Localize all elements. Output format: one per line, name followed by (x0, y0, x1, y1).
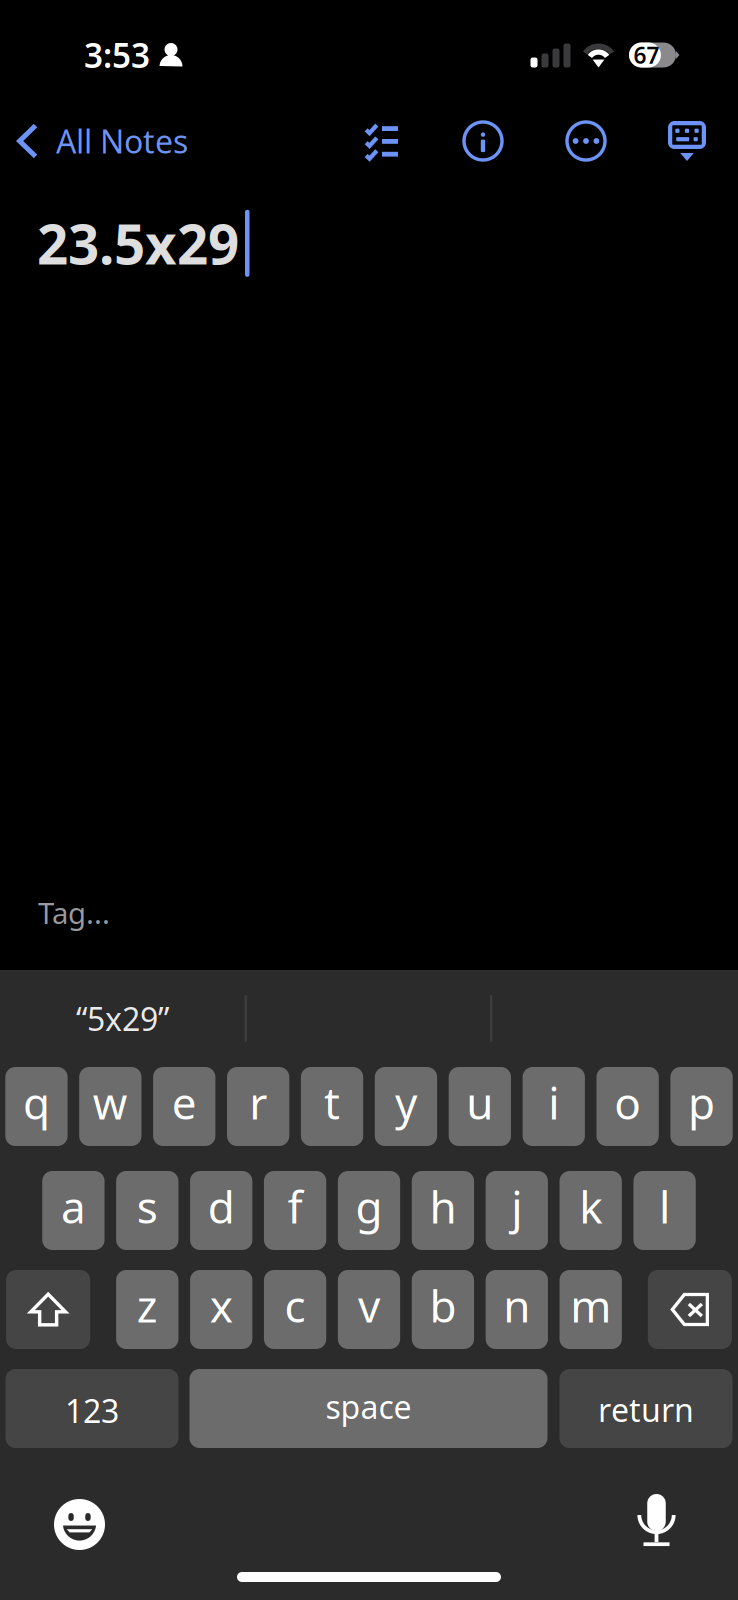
staticText: a (61, 1177, 86, 1236)
staticText: j (511, 1177, 522, 1236)
button[interactable]: return (559, 1369, 732, 1448)
staticText: 3:53 (84, 33, 150, 77)
staticText: o (614, 1073, 641, 1132)
staticText: 123 (65, 1389, 119, 1432)
staticText: d (208, 1177, 235, 1236)
button[interactable]: space (189, 1369, 547, 1448)
staticText: “5x29” (76, 997, 169, 1040)
button[interactable]: w (79, 1067, 141, 1146)
button[interactable]: b (412, 1270, 474, 1349)
button[interactable]: p (670, 1067, 733, 1146)
button[interactable]: n (486, 1270, 548, 1349)
button[interactable]: q (5, 1067, 68, 1146)
staticText: n (503, 1276, 530, 1335)
button[interactable]: Dictation (637, 1494, 676, 1550)
button[interactable]: d (190, 1171, 252, 1250)
staticText: return (598, 1388, 694, 1431)
staticText: b (429, 1276, 456, 1335)
button[interactable]: x (190, 1270, 252, 1349)
button[interactable]: f (264, 1171, 326, 1250)
button[interactable]: e (153, 1067, 215, 1146)
button[interactable]: Shift (6, 1270, 90, 1349)
staticText: 67 (633, 40, 659, 70)
staticText: t (324, 1073, 340, 1132)
staticText: e (172, 1073, 197, 1132)
staticText: h (429, 1177, 456, 1236)
button[interactable]: c (264, 1270, 326, 1349)
button[interactable]: Checklist (346, 110, 418, 172)
button[interactable]: j (486, 1171, 548, 1250)
button[interactable]: u (449, 1067, 511, 1146)
button[interactable]: Delete (648, 1270, 732, 1349)
staticText: k (579, 1177, 602, 1236)
button[interactable]: o (596, 1067, 659, 1146)
staticText: i (548, 1073, 559, 1132)
staticText: z (137, 1276, 158, 1335)
button[interactable]: Tag... (0, 893, 738, 970)
button[interactable]: All Notes (0, 108, 188, 174)
staticText: g (355, 1177, 382, 1236)
button[interactable]: a (42, 1171, 104, 1250)
button[interactable]: r (227, 1067, 289, 1146)
staticText: p (688, 1073, 715, 1132)
staticText: 23.5x29 (37, 207, 239, 280)
staticText: y (395, 1073, 417, 1132)
button[interactable]: g (338, 1171, 400, 1250)
staticText: s (137, 1177, 158, 1236)
button[interactable]: k (559, 1171, 622, 1250)
staticText: l (659, 1177, 670, 1236)
staticText: w (93, 1073, 128, 1132)
staticText: m (570, 1276, 611, 1335)
staticText: q (23, 1073, 50, 1132)
staticText: r (249, 1073, 267, 1132)
button[interactable]: 123 (5, 1369, 178, 1448)
staticText: All Notes (56, 120, 188, 162)
button[interactable]: s (116, 1171, 178, 1250)
staticText: v (358, 1276, 380, 1335)
button[interactable]: h (412, 1171, 474, 1250)
button[interactable]: z (116, 1270, 178, 1349)
staticText: c (285, 1276, 306, 1335)
button[interactable]: More (550, 110, 622, 172)
staticText: space (325, 1385, 411, 1428)
button[interactable]: Hide Keyboard (651, 110, 723, 172)
button[interactable]: i (523, 1067, 585, 1146)
staticText: f (288, 1177, 303, 1236)
staticText: u (466, 1073, 493, 1132)
button[interactable]: “5x29” (0, 970, 244, 1067)
button[interactable]: l (633, 1171, 696, 1250)
button[interactable]: Info (447, 110, 519, 172)
button[interactable]: y (375, 1067, 437, 1146)
button[interactable]: m (559, 1270, 622, 1349)
staticText: x (210, 1276, 233, 1335)
button[interactable]: t (301, 1067, 363, 1146)
button[interactable]: v (338, 1270, 400, 1349)
button[interactable]: Emoji (54, 1499, 105, 1550)
staticText: Tag... (38, 893, 110, 932)
